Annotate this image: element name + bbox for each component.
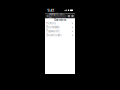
staticText: History: [46, 21, 55, 25]
button[interactable]: Downloads: [45, 33, 75, 37]
button[interactable]: Reload: [68, 15, 70, 17]
button[interactable]: example.com: [46, 14, 66, 18]
button[interactable]: Passwords: [45, 29, 75, 33]
staticText: Overview: [54, 18, 66, 22]
staticText: 9:41: [47, 8, 54, 13]
button[interactable]: Bookmarks: [45, 25, 75, 29]
staticText: Bookmarks: [46, 25, 59, 29]
staticText: example.com: [49, 12, 64, 20]
button[interactable]: Tabs: [71, 15, 74, 17]
button[interactable]: History: [45, 21, 75, 25]
staticText: Passwords: [46, 29, 59, 33]
staticText: Downloads: [46, 33, 61, 37]
